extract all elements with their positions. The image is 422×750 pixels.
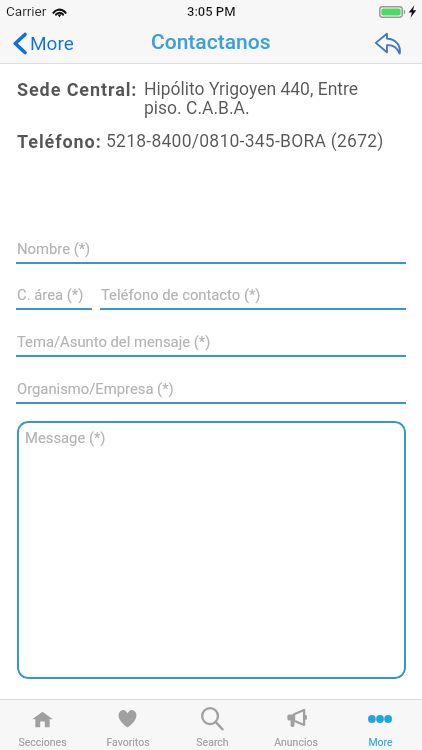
- staticText: Message (*): [25, 429, 106, 446]
- button[interactable]: C. área (*): [16, 284, 92, 310]
- staticText: More: [368, 736, 393, 748]
- button[interactable]: Search: [170, 700, 254, 750]
- staticText: Hipólito Yrigoyen 440, Entre piso. C.A.B…: [144, 79, 372, 118]
- button[interactable]: Tema/Asunto del mensaje (*): [16, 331, 406, 357]
- button[interactable]: More: [0, 26, 86, 60]
- staticText: Nombre (*): [17, 240, 91, 257]
- staticText: Teléfono:: [17, 131, 102, 152]
- staticText: Favoritos: [106, 736, 150, 748]
- staticText: Sede Central:: [17, 79, 138, 100]
- staticText: Carrier: [6, 3, 47, 19]
- staticText: Secciones: [18, 736, 67, 748]
- staticText: Anuncios: [274, 736, 318, 748]
- staticText: 5218-8400/0810-345-BORA (2672): [106, 131, 384, 152]
- staticText: Contactanos: [151, 30, 271, 55]
- staticText: Teléfono de contacto (*): [101, 286, 261, 303]
- staticText: C. área (*): [17, 286, 84, 303]
- button[interactable]: Nombre (*): [16, 238, 406, 264]
- staticText: Search: [196, 736, 229, 748]
- staticText: Organismo/Empresa (*): [17, 380, 174, 397]
- button[interactable]: Teléfono de contacto (*): [100, 284, 406, 310]
- staticText: More: [30, 32, 74, 54]
- button[interactable]: Message (*): [17, 421, 406, 679]
- button[interactable]: More: [338, 700, 422, 750]
- button[interactable]: Secciones: [0, 700, 85, 750]
- button[interactable]: Favoritos: [85, 700, 170, 750]
- button[interactable]: Reply: [361, 24, 422, 63]
- staticText: Tema/Asunto del mensaje (*): [17, 333, 211, 350]
- button[interactable]: Organismo/Empresa (*): [16, 378, 406, 404]
- staticText: 3:05 PM: [187, 4, 236, 19]
- button[interactable]: Anuncios: [254, 700, 338, 750]
